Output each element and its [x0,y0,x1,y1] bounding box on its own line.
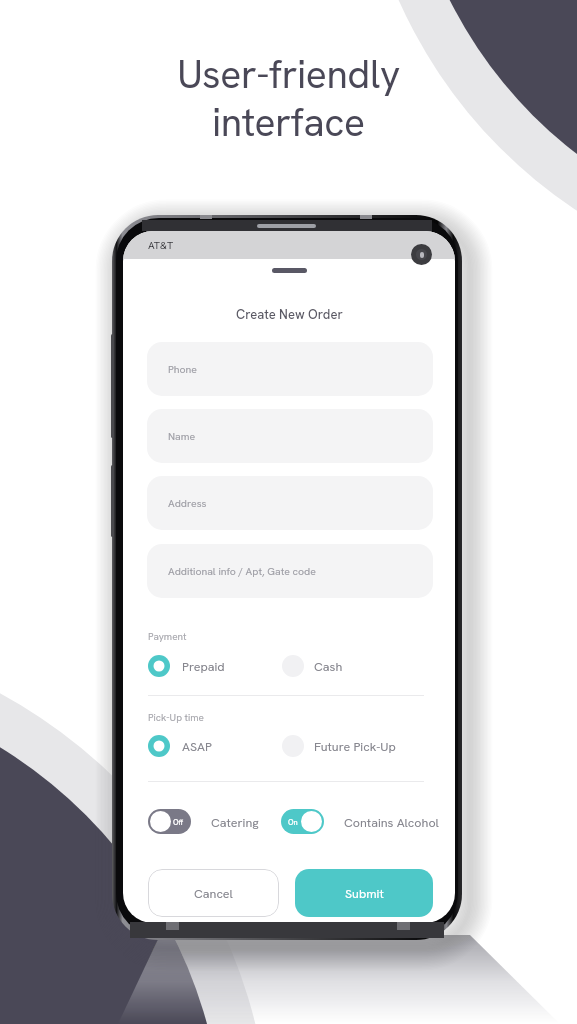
staticText: interface [212,97,365,148]
button[interactable]: Additional info / Apt, Gate code [147,544,433,598]
button[interactable]: Address [147,476,433,530]
staticText: Create New Order [236,306,343,323]
staticText: Catering [211,814,259,830]
staticText: Prepaid [182,658,225,674]
staticText: ASAP [182,738,212,754]
staticText: Off [173,817,184,827]
staticText: Name [168,429,196,443]
button[interactable]: Cancel [148,869,279,917]
button[interactable]: On [281,809,324,834]
staticText: Payment [148,630,187,643]
button[interactable]: Phone [147,342,433,396]
button[interactable]: Name [147,409,433,463]
staticText: Additional info / Apt, Gate code [168,564,316,578]
staticText: On [288,817,298,827]
staticText: User-friendly [177,49,400,100]
staticText: AT&T [148,238,174,252]
staticText: Cancel [194,885,233,901]
button[interactable]: Off [148,809,191,834]
button[interactable]: Prepaid [148,655,225,677]
button[interactable]: Submit [295,869,433,917]
button[interactable]: Future Pick-Up [282,735,396,757]
button[interactable]: ASAP [148,735,212,757]
staticText: Phone [168,362,198,376]
staticText: Cash [314,658,343,674]
staticText: Pick-Up time [148,711,204,724]
staticText: Address [168,496,207,510]
staticText: Submit [345,885,384,901]
staticText: Future Pick-Up [314,738,396,754]
staticText: Contains Alcohol [344,814,439,830]
button[interactable]: Cash [282,655,343,677]
